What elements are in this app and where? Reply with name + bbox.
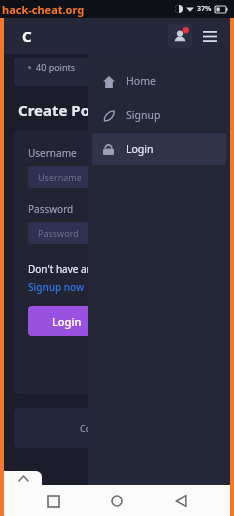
staticText: Login: [52, 314, 82, 329]
staticText: Password: [28, 202, 74, 216]
staticText: C: [22, 26, 32, 46]
staticText: Home: [126, 74, 156, 88]
staticText: Username: [28, 146, 77, 160]
button[interactable]: Password: [28, 222, 206, 244]
staticText: Signup: [126, 108, 161, 122]
button[interactable]: Recent apps: [38, 486, 68, 516]
button[interactable]: Home: [102, 486, 132, 516]
staticText: Create Post: [18, 100, 105, 120]
button[interactable]: Login: [92, 133, 226, 165]
button[interactable]: Hide keyboard: [4, 471, 42, 485]
button[interactable]: Signup: [92, 99, 226, 131]
staticText: Don't have an account?: [28, 262, 137, 276]
staticText: Password: [38, 227, 79, 239]
button[interactable]: Menu: [198, 24, 222, 48]
button[interactable]: Back: [166, 486, 196, 516]
button[interactable]: Login: [28, 306, 106, 336]
button[interactable]: Account notifications: [168, 24, 192, 48]
staticText: 37%: [197, 4, 212, 14]
button[interactable]: Signup now: [28, 280, 84, 294]
staticText: Username: [38, 171, 82, 183]
staticText: 40 points: [36, 61, 76, 73]
staticText: Login: [126, 142, 154, 156]
button[interactable]: Username: [28, 166, 206, 188]
button[interactable]: Home: [92, 65, 226, 97]
staticText: hack-cheat.org: [2, 2, 85, 17]
staticText: Copyright © 2021: [80, 422, 155, 434]
